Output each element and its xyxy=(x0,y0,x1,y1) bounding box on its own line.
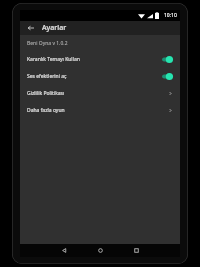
button[interactable]: Back xyxy=(53,244,75,257)
staticText: 10:10 xyxy=(164,12,177,19)
button[interactable]: Ses efektlerini aç xyxy=(20,68,180,85)
staticText: Daha fazla oyun xyxy=(27,107,168,114)
staticText: Beni Oyna v 1.0.2 xyxy=(27,40,68,47)
staticText: Karanlık Temayı Kullan xyxy=(27,56,159,63)
staticText: Ayarlar xyxy=(42,23,67,33)
button[interactable]: Beni Oyna v 1.0.2 xyxy=(20,35,180,51)
button[interactable]: Daha fazla oyun xyxy=(20,102,180,119)
staticText: Gizlilik Politikası xyxy=(27,90,168,97)
button[interactable]: Gizlilik Politikası xyxy=(20,85,180,102)
button[interactable]: Recent apps xyxy=(125,244,147,257)
button[interactable]: Back xyxy=(25,22,37,34)
button[interactable]: Home xyxy=(89,244,111,257)
button[interactable]: Karanlık Temayı Kullan xyxy=(20,51,180,68)
staticText: Ses efektlerini aç xyxy=(27,73,159,80)
